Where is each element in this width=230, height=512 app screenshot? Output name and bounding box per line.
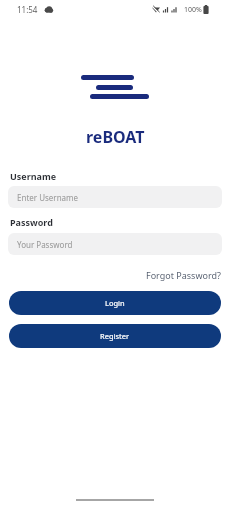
staticText: Username	[10, 170, 57, 182]
staticText: reBOAT	[86, 126, 145, 148]
staticText: Enter Username	[17, 192, 79, 203]
button[interactable]: Enter Username	[8, 186, 222, 208]
staticText: Password	[10, 216, 53, 228]
staticText: 11:54	[17, 4, 38, 15]
button[interactable]: Your Password	[8, 233, 222, 255]
staticText: Login	[105, 298, 125, 308]
staticText: Your Password	[17, 239, 73, 250]
staticText: Register	[100, 331, 130, 341]
staticText: 100%	[184, 5, 202, 15]
button[interactable]: Login	[9, 291, 221, 315]
button[interactable]: Forgot Password?	[146, 269, 221, 281]
button[interactable]: Register	[9, 324, 221, 348]
